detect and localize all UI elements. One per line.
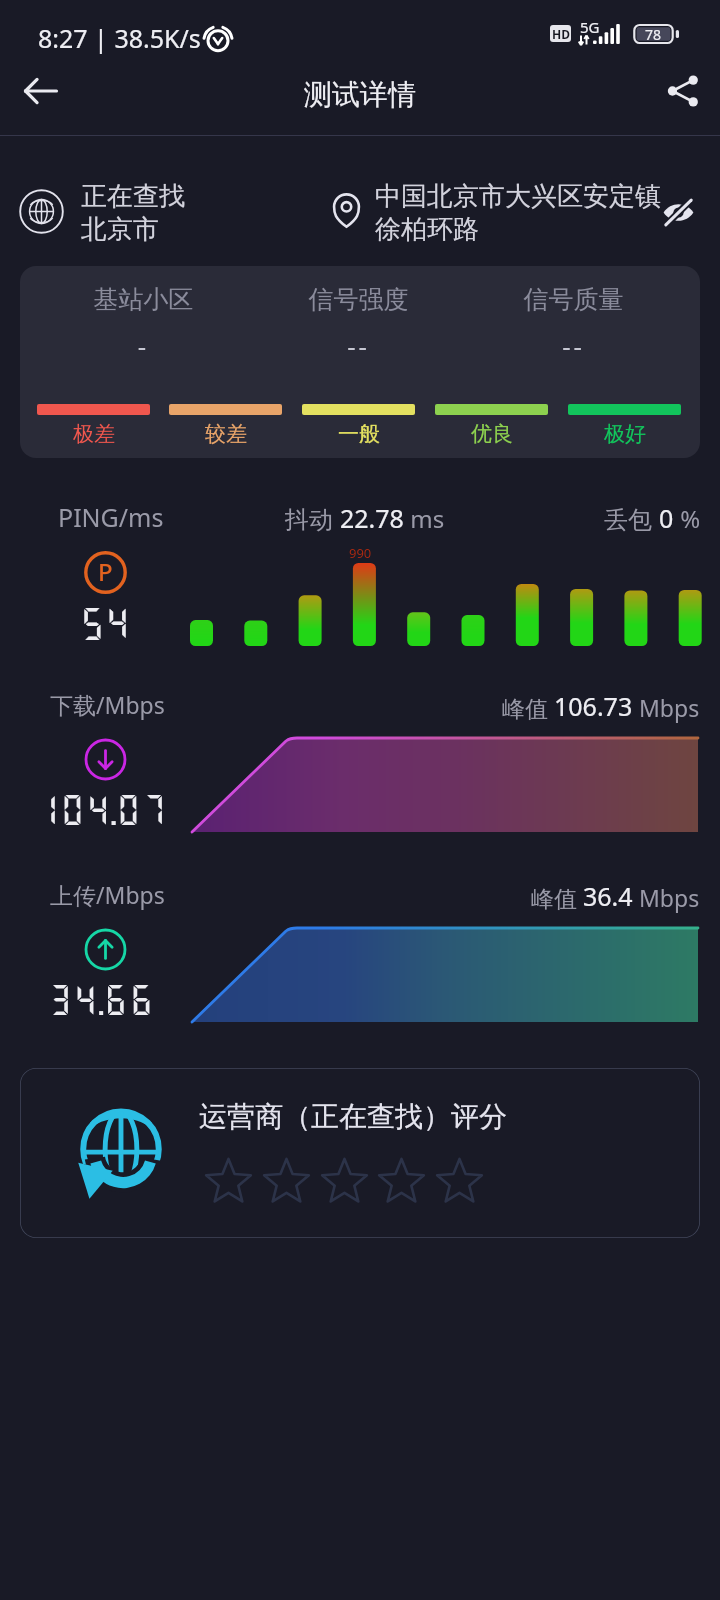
staticText: 信号质量 [466,284,681,315]
staticText: 34.66 [48,980,155,1019]
staticText: % [674,502,701,535]
staticText: HD [552,26,570,42]
staticText: 测试详情 [304,77,416,112]
staticText: 990 [349,544,372,562]
staticText: 78 [645,25,662,44]
staticText: 徐柏环路 [375,213,479,246]
staticText: Mbps [633,882,700,913]
staticText: 丢包 [604,502,659,535]
button[interactable]: Share [643,59,720,123]
staticText: 正在查找 [81,180,185,213]
staticText: 抖动 [285,502,340,535]
staticText: -- [251,328,466,363]
staticText: -- [466,328,681,363]
staticText: 一般 [338,421,380,447]
staticText: 极差 [73,421,115,447]
button[interactable]: Hide location [654,188,702,236]
staticText: - [36,328,251,363]
staticText: 5G [580,17,600,37]
staticText: 22.78 [340,501,404,535]
staticText: 优良 [471,421,513,447]
staticText: 中国北京市大兴区安定镇 [375,180,661,213]
staticText: P [98,555,113,588]
staticText: 极好 [604,421,646,447]
staticText: 106.73 [554,689,633,723]
staticText: PING/ms [58,500,164,534]
staticText: 北京市 [81,213,159,246]
staticText: 54 [80,603,131,643]
staticText: 36.4 [583,879,633,913]
staticText: ms [404,502,445,535]
staticText: 8:27 | 38.5K/s [38,21,201,55]
staticText: 104.07 [35,790,168,829]
staticText: 运营商（正在查找）评分 [199,1099,507,1134]
staticText: 基站小区 [36,284,251,315]
staticText: 下载/Mbps [50,689,165,720]
staticText: 上传/Mbps [50,879,165,910]
staticText: 信号强度 [251,284,466,315]
staticText: Mbps [633,692,700,723]
staticText: 峰值 [502,692,554,723]
button[interactable]: Back [0,59,85,123]
button[interactable] [20,1068,700,1238]
staticText: 峰值 [531,882,583,913]
staticText: 0 [659,501,674,535]
staticText: 较差 [205,421,247,447]
